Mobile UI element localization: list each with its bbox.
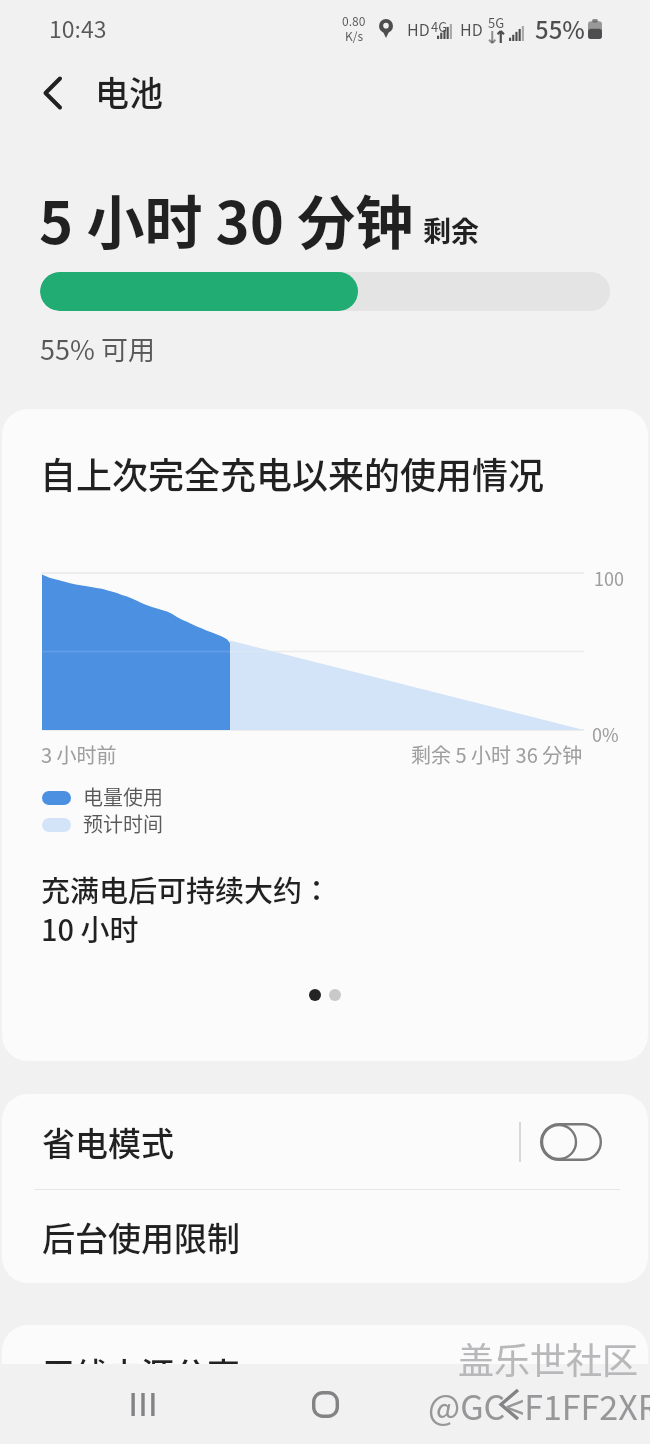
staticText: 预计时间 bbox=[83, 809, 163, 838]
staticText: 55% bbox=[535, 11, 585, 46]
staticText: 0% bbox=[592, 721, 619, 747]
staticText: 10 小时 bbox=[41, 907, 139, 949]
button[interactable]: Home bbox=[280, 1364, 370, 1444]
staticText: 4G bbox=[431, 17, 448, 36]
staticText: 省电模式 bbox=[42, 1118, 174, 1166]
staticText: 电池 bbox=[95, 67, 163, 116]
staticText: 3 小时前 bbox=[41, 740, 117, 769]
button[interactable]: 省电模式 bbox=[2, 1094, 648, 1190]
staticText: 自上次完全充电以来的使用情况 bbox=[40, 447, 545, 499]
button[interactable]: Back bbox=[464, 1364, 554, 1444]
button[interactable]: Power saving mode toggle bbox=[540, 1123, 602, 1161]
staticText: @GC<F1FF2XR bbox=[428, 1381, 650, 1430]
staticText: 无线电源分享 bbox=[42, 1349, 240, 1397]
button[interactable]: 无线电源分享 bbox=[2, 1325, 648, 1421]
staticText: 5G bbox=[488, 13, 505, 32]
staticText: 10:43 bbox=[49, 11, 107, 44]
staticText: 0.80 bbox=[342, 12, 366, 29]
staticText: 电量使用 bbox=[83, 782, 163, 811]
button[interactable]: Back bbox=[26, 66, 79, 119]
staticText: K/s bbox=[345, 27, 364, 44]
staticText: 后台使用限制 bbox=[42, 1213, 240, 1261]
staticText: HD bbox=[460, 17, 483, 40]
staticText: HD bbox=[407, 17, 430, 40]
staticText: 100 bbox=[594, 565, 624, 591]
staticText: 剩余 bbox=[423, 210, 480, 251]
staticText: 充满电后可持续大约： bbox=[41, 868, 332, 910]
staticText: 盖乐世社区 bbox=[458, 1332, 639, 1384]
staticText: 5 小时 30 分钟 bbox=[39, 177, 414, 261]
staticText: 55% 可用 bbox=[40, 329, 155, 368]
staticText: 剩余 5 小时 36 分钟 bbox=[411, 740, 583, 769]
button[interactable]: Recent apps bbox=[98, 1364, 188, 1444]
button[interactable]: 后台使用限制 bbox=[2, 1190, 648, 1283]
